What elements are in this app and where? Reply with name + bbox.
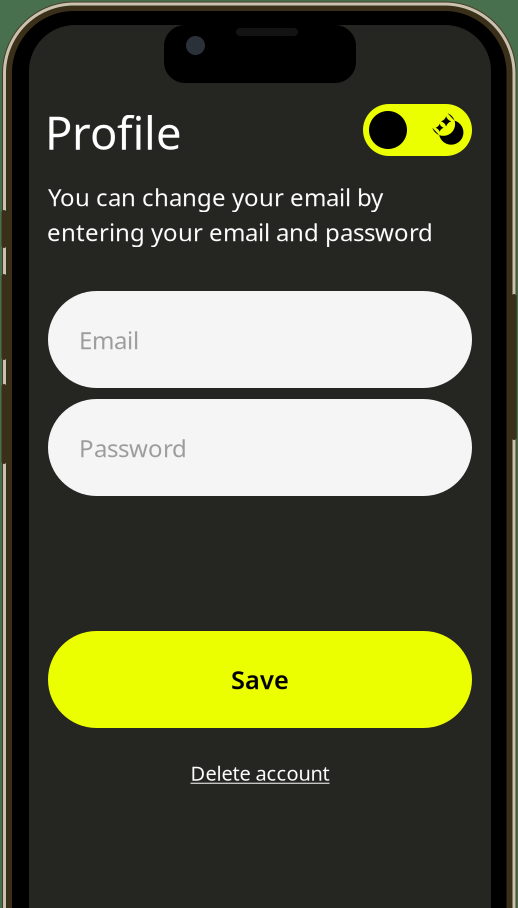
staticText: Password [79, 432, 187, 464]
staticText: Email [79, 324, 139, 356]
button[interactable]: Toggle dark mode [363, 104, 472, 156]
button[interactable]: Email [48, 291, 472, 388]
staticText: You can change your email by [48, 181, 383, 213]
staticText: Delete account [190, 760, 329, 786]
staticText: Profile [45, 102, 182, 162]
staticText: Save [231, 663, 289, 696]
staticText: entering your email and password [47, 216, 433, 248]
button[interactable]: Password [48, 399, 472, 496]
button[interactable]: Save [48, 631, 472, 728]
button[interactable]: Delete account [48, 752, 472, 794]
